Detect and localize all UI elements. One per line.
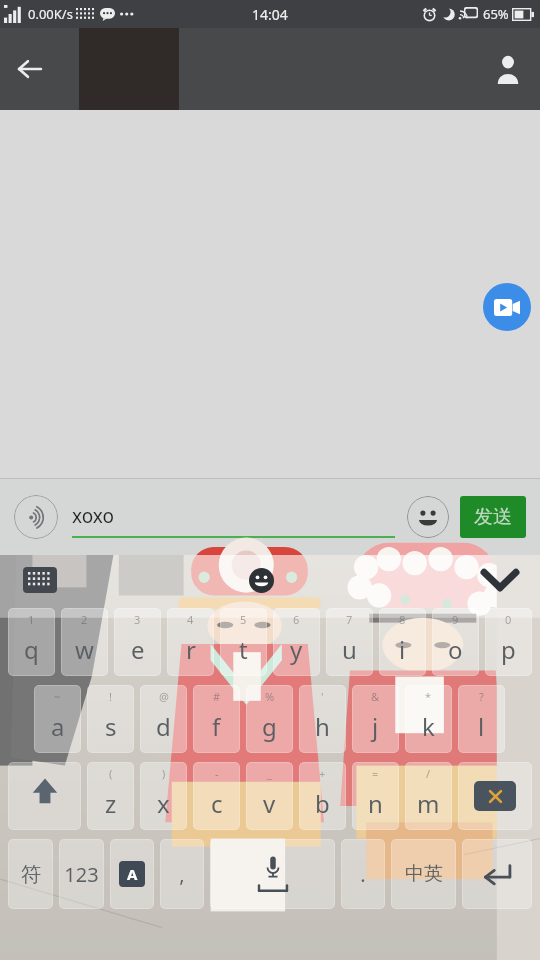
button[interactable]: Emoji	[407, 496, 449, 538]
button[interactable]: Input language	[110, 839, 154, 909]
button[interactable]: ?	[458, 685, 505, 753]
button[interactable]: 8	[379, 608, 426, 676]
button[interactable]: ,	[160, 839, 204, 909]
staticText: u	[342, 633, 357, 666]
staticText: 0.00K/s	[28, 5, 73, 23]
staticText: #	[213, 689, 221, 704]
staticText: i	[399, 633, 406, 666]
button[interactable]: 符	[8, 839, 53, 909]
staticText: _	[267, 766, 272, 781]
button[interactable]: #	[193, 685, 240, 753]
staticText: 3	[134, 612, 141, 627]
staticText: k	[422, 710, 435, 743]
button[interactable]: 中英	[391, 839, 456, 909]
button[interactable]: %	[246, 685, 293, 753]
button[interactable]: /	[405, 762, 452, 830]
staticText: -	[215, 766, 219, 781]
staticText: r	[186, 633, 196, 666]
staticText: !	[109, 689, 112, 704]
staticText: 2	[81, 612, 88, 627]
staticText: ,	[179, 861, 185, 888]
staticText: c	[211, 787, 223, 820]
staticText: 65%	[483, 5, 509, 23]
staticText: &	[371, 689, 380, 704]
button[interactable]: *	[405, 685, 452, 753]
button[interactable]: 0	[485, 608, 532, 676]
button[interactable]: xoxo	[72, 494, 395, 540]
button[interactable]: Emoji keyboard	[242, 561, 280, 599]
button[interactable]: Hide keyboard	[472, 555, 528, 605]
staticText: p	[501, 633, 516, 666]
staticText: s	[105, 710, 117, 743]
button[interactable]: Switch keyboard	[20, 563, 60, 597]
button[interactable]: '	[299, 685, 346, 753]
staticText: d	[156, 710, 171, 743]
button[interactable]	[8, 762, 81, 830]
button[interactable]: 2	[61, 608, 108, 676]
button[interactable]: =	[352, 762, 399, 830]
staticText: 发送	[474, 505, 512, 529]
staticText: )	[162, 766, 166, 781]
button[interactable]: 7	[326, 608, 373, 676]
staticText: x	[157, 787, 170, 820]
staticText: l	[478, 710, 485, 743]
button[interactable]: !	[87, 685, 134, 753]
button[interactable]: Backspace	[458, 762, 532, 830]
button[interactable]: 4	[167, 608, 214, 676]
button[interactable]: Enter	[462, 839, 532, 909]
staticText: t	[239, 633, 248, 666]
staticText: 1	[28, 612, 35, 627]
button[interactable]: &	[352, 685, 399, 753]
button[interactable]: )	[140, 762, 187, 830]
staticText: m	[417, 787, 440, 820]
button[interactable]: ~	[34, 685, 81, 753]
button[interactable]: 3	[114, 608, 161, 676]
staticText: *	[425, 689, 432, 704]
staticText: e	[131, 633, 145, 666]
staticText: v	[263, 787, 276, 820]
button[interactable]: @	[140, 685, 187, 753]
staticText: 7	[346, 612, 353, 627]
staticText: b	[315, 787, 330, 820]
button[interactable]: -	[193, 762, 240, 830]
staticText: .	[360, 861, 366, 888]
staticText: A	[127, 864, 138, 884]
staticText: xoxo	[72, 503, 114, 529]
staticText: 4	[187, 612, 194, 627]
button[interactable]: 6	[273, 608, 320, 676]
button[interactable]: 123	[59, 839, 104, 909]
button[interactable]: 9	[432, 608, 479, 676]
staticText: h	[315, 710, 330, 743]
staticText: 6	[293, 612, 300, 627]
staticText: 14:04	[252, 5, 288, 24]
button[interactable]: _	[246, 762, 293, 830]
button[interactable]: Voice input	[14, 495, 58, 539]
button[interactable]: +	[299, 762, 346, 830]
staticText: y	[290, 633, 303, 666]
button[interactable]: Video call	[483, 283, 531, 331]
staticText: ?	[479, 689, 484, 704]
staticText: o	[448, 633, 463, 666]
button[interactable]: 1	[8, 608, 55, 676]
button[interactable]: Back	[0, 39, 60, 99]
button[interactable]: Space	[210, 839, 335, 909]
staticText: z	[105, 787, 117, 820]
staticText: 中英	[405, 862, 443, 886]
staticText: ~	[54, 689, 61, 704]
staticText: 0	[505, 612, 512, 627]
button[interactable]: 5	[220, 608, 267, 676]
staticText: 符	[21, 862, 41, 887]
staticText: j	[372, 710, 379, 743]
button[interactable]: Contact profile	[476, 37, 540, 101]
staticText: w	[75, 633, 94, 666]
button[interactable]: .	[341, 839, 385, 909]
staticText: q	[24, 633, 39, 666]
staticText: 5	[240, 612, 247, 627]
staticText: =	[372, 766, 379, 781]
staticText: 123	[64, 861, 99, 888]
staticText: f	[212, 710, 221, 743]
staticText: @	[159, 689, 169, 704]
button[interactable]: 发送	[460, 496, 526, 538]
button[interactable]: (	[87, 762, 134, 830]
staticText: %	[265, 689, 275, 704]
